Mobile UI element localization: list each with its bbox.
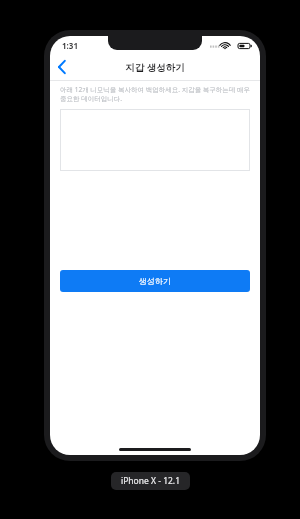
staticText: 지갑 생성하기	[125, 61, 185, 74]
staticText: 생성하기	[139, 276, 171, 286]
staticText: 아래 12개 니모닉을 복사하여 백업하세요. 지갑을 복구하는데 매우 중요한…	[60, 85, 250, 103]
button[interactable]	[60, 109, 250, 171]
button[interactable]: iPhone X - 12.1	[121, 475, 180, 487]
staticText: 1:31	[62, 40, 78, 51]
button[interactable]: Back	[50, 55, 74, 79]
button[interactable]: 생성하기	[60, 270, 250, 292]
staticText: iPhone X - 12.1	[121, 475, 180, 487]
